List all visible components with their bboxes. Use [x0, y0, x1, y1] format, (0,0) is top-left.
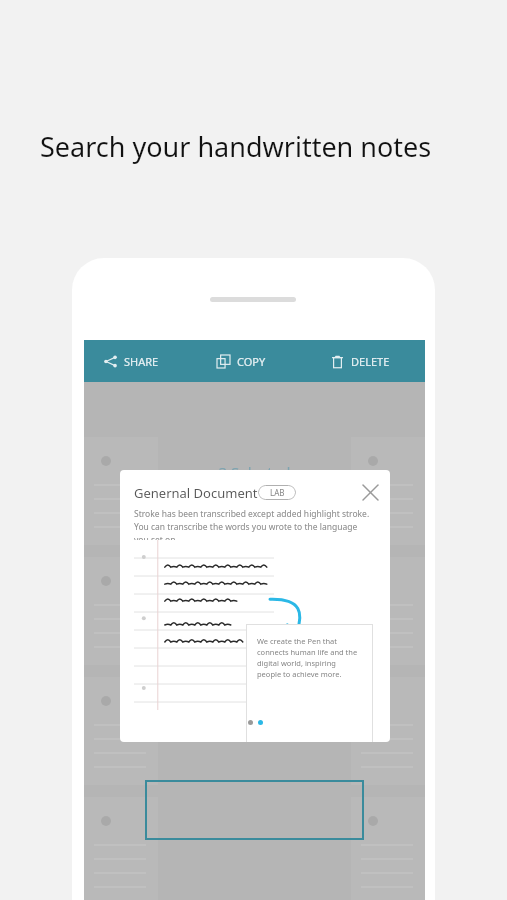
staticText: We create the Pen that connects human li…: [257, 636, 361, 679]
staticText: Stroke has been transcribed except added…: [134, 508, 374, 546]
staticText: Search your handwritten notes: [40, 128, 432, 165]
button[interactable]: SHARE: [84, 340, 197, 382]
staticText: LAB: [270, 487, 285, 498]
button[interactable]: DELETE: [311, 340, 425, 382]
staticText: DELETE: [351, 354, 390, 369]
button[interactable]: LAB: [258, 485, 296, 500]
button[interactable]: COPY: [197, 340, 311, 382]
staticText: Genernal Document: [134, 484, 258, 502]
staticText: COPY: [237, 354, 266, 369]
button[interactable]: Close: [358, 480, 382, 504]
staticText: SHARE: [124, 354, 159, 369]
staticText: 3 Selected: [84, 462, 425, 482]
button[interactable]: [145, 780, 364, 840]
